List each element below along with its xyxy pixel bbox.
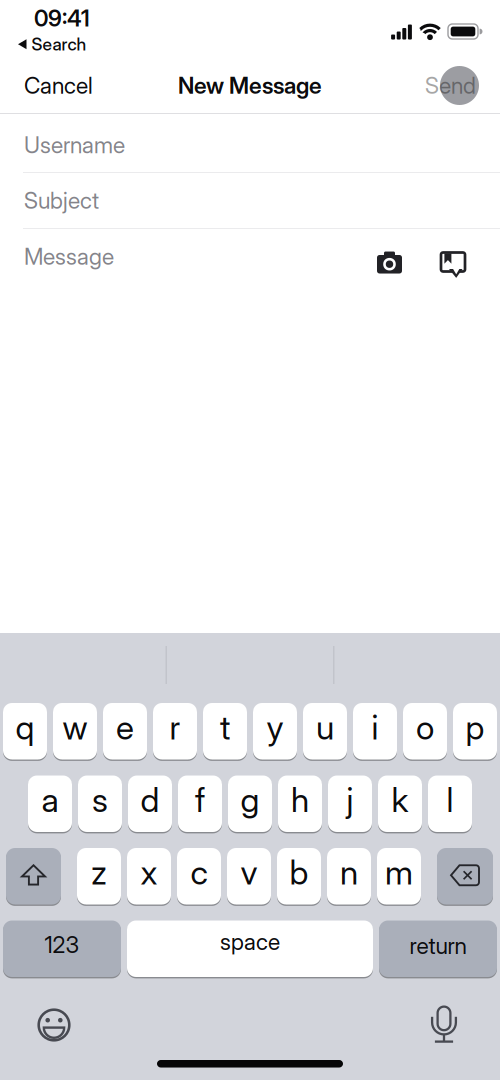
- button[interactable]: Dictation: [430, 1006, 458, 1044]
- button[interactable]: Cancel: [24, 72, 93, 99]
- button[interactable]: t: [203, 702, 247, 760]
- button[interactable]: Back to Search: [18, 34, 86, 54]
- button[interactable]: d: [128, 774, 172, 833]
- button[interactable]: space: [127, 919, 373, 978]
- staticText: t: [220, 708, 230, 747]
- button[interactable]: i: [353, 702, 397, 760]
- staticText: h: [291, 780, 309, 819]
- button[interactable]: Subject: [0, 173, 500, 228]
- button[interactable]: z: [77, 847, 121, 905]
- staticText: 09:41: [34, 5, 90, 32]
- staticText: q: [15, 708, 34, 747]
- button[interactable]: m: [377, 847, 421, 905]
- staticText: New Message: [178, 72, 322, 99]
- staticText: o: [416, 708, 434, 747]
- staticText: a: [41, 780, 58, 819]
- button[interactable]: h: [278, 774, 322, 833]
- staticText: r: [169, 708, 180, 747]
- button[interactable]: Attach Photo: [377, 245, 402, 267]
- staticText: u: [316, 708, 334, 747]
- button[interactable]: Send: [425, 66, 476, 105]
- button[interactable]: l: [428, 774, 472, 833]
- staticText: Subject: [24, 187, 99, 214]
- button[interactable]: Emoji: [37, 1008, 71, 1042]
- staticText: p: [465, 708, 484, 747]
- button[interactable]: c: [177, 847, 221, 905]
- staticText: y: [266, 708, 283, 747]
- staticText: l: [446, 780, 453, 819]
- button[interactable]: Saved Messages: [441, 243, 466, 269]
- staticText: k: [391, 780, 408, 819]
- staticText: c: [190, 853, 207, 892]
- button[interactable]: g: [228, 774, 272, 833]
- staticText: d: [140, 780, 159, 819]
- button[interactable]: a: [28, 774, 72, 833]
- button[interactable]: Numbers: [3, 919, 121, 978]
- button[interactable]: w: [53, 702, 97, 760]
- button[interactable]: Message: [0, 229, 500, 284]
- staticText: Message: [24, 243, 114, 270]
- staticText: f: [195, 780, 205, 819]
- button[interactable]: u: [303, 702, 347, 760]
- staticText: w: [62, 708, 87, 747]
- staticText: space: [220, 928, 280, 955]
- button[interactable]: x: [127, 847, 171, 905]
- button[interactable]: Delete: [437, 847, 493, 905]
- button[interactable]: y: [253, 702, 297, 760]
- staticText: s: [92, 780, 108, 819]
- button[interactable]: q: [3, 702, 47, 760]
- button[interactable]: s: [78, 774, 122, 833]
- button[interactable]: f: [178, 774, 222, 833]
- staticText: i: [371, 708, 378, 747]
- staticText: j: [346, 780, 353, 819]
- button[interactable]: n: [327, 847, 371, 905]
- button[interactable]: Shift: [6, 847, 61, 905]
- button[interactable]: v: [227, 847, 271, 905]
- staticText: m: [385, 853, 413, 892]
- button[interactable]: j: [328, 774, 372, 833]
- staticText: Send: [425, 72, 476, 99]
- button[interactable]: k: [378, 774, 422, 833]
- staticText: n: [340, 853, 358, 892]
- button[interactable]: Username: [0, 114, 500, 172]
- button[interactable]: return: [379, 919, 497, 978]
- staticText: Search: [31, 34, 86, 54]
- staticText: Cancel: [24, 72, 93, 99]
- button[interactable]: p: [453, 702, 497, 760]
- button[interactable]: b: [277, 847, 321, 905]
- button[interactable]: e: [103, 702, 147, 760]
- staticText: return: [409, 932, 466, 959]
- button[interactable]: r: [153, 702, 197, 760]
- staticText: v: [240, 853, 257, 892]
- staticText: b: [289, 853, 308, 892]
- staticText: z: [91, 853, 107, 892]
- staticText: Username: [24, 132, 125, 158]
- staticText: e: [116, 708, 134, 747]
- staticText: g: [240, 780, 259, 819]
- button[interactable]: o: [403, 702, 447, 760]
- staticText: x: [140, 853, 157, 892]
- staticText: 123: [44, 931, 79, 958]
